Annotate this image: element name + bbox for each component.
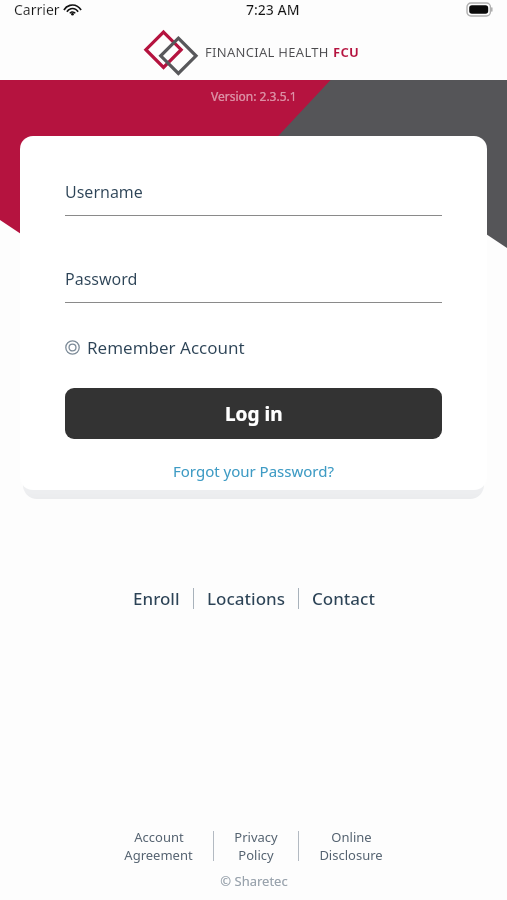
staticText: FINANCIAL HEALTH: [205, 43, 333, 61]
button[interactable]: Enroll: [127, 583, 186, 614]
staticText: FCU: [333, 43, 360, 61]
button[interactable]: Account: [120, 826, 197, 866]
staticText: Log in: [225, 401, 283, 427]
staticText: Agreement: [124, 846, 193, 864]
staticText: Online: [331, 828, 372, 846]
staticText: Carrier: [14, 0, 60, 19]
button[interactable]: Password: [65, 268, 442, 303]
button[interactable]: Username: [65, 181, 442, 216]
button[interactable]: Contact: [306, 583, 381, 614]
staticText: © Sharetec: [220, 872, 288, 890]
staticText: Username: [65, 181, 143, 203]
staticText: Version: 2.3.5.1: [211, 88, 297, 104]
button[interactable]: Locations: [201, 583, 291, 614]
staticText: 7:23 AM: [246, 0, 300, 19]
staticText: Privacy: [234, 828, 278, 846]
button[interactable]: Privacy: [230, 826, 282, 866]
button[interactable]: Online: [315, 826, 387, 866]
staticText: Disclosure: [319, 846, 383, 864]
button[interactable]: Log in: [65, 388, 442, 439]
button[interactable]: Remember Account: [65, 333, 245, 362]
button[interactable]: Forgot your Password?: [169, 457, 338, 485]
staticText: Account: [134, 828, 184, 846]
staticText: Policy: [238, 846, 274, 864]
staticText: Password: [65, 268, 138, 290]
staticText: Remember Account: [87, 336, 245, 359]
